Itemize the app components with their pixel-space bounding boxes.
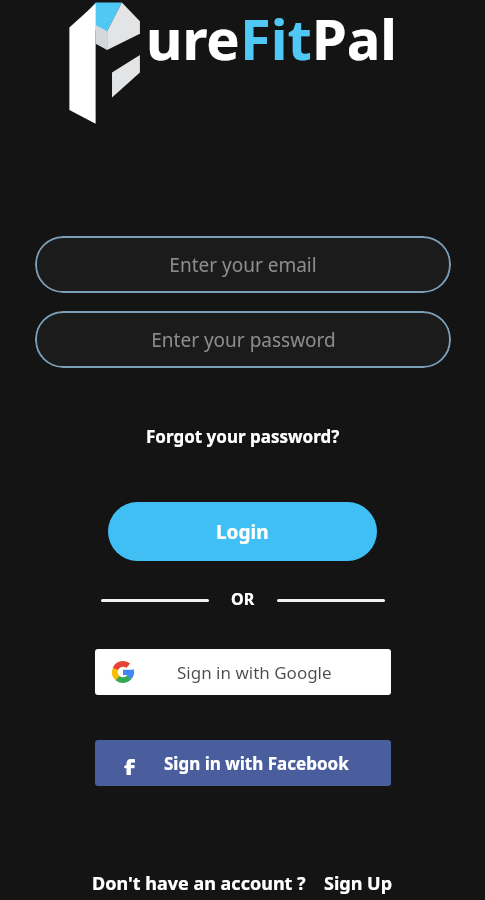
button[interactable]: Enter your email (35, 236, 451, 293)
staticText: Enter your password (151, 327, 336, 353)
button[interactable]: Login (108, 502, 377, 561)
staticText: ure (146, 0, 240, 76)
staticText: Sign Up (324, 871, 393, 896)
staticText: Login (216, 519, 269, 545)
staticText: OR (231, 588, 255, 610)
button[interactable]: Enter your password (35, 311, 451, 368)
staticText: f (124, 751, 135, 775)
staticText: Pal (312, 0, 398, 76)
staticText: Sign in with Facebook (164, 752, 349, 775)
button[interactable]: Sign Up (324, 871, 393, 896)
button[interactable]: Forgot your password? (140, 421, 346, 452)
staticText: Forgot your password? (146, 425, 340, 448)
button[interactable]: Sign in with Google (95, 649, 391, 695)
staticText: Fit (240, 0, 312, 76)
button[interactable]: f (95, 740, 391, 786)
staticText: Sign in with Google (177, 661, 332, 684)
staticText: Enter your email (169, 252, 317, 278)
staticText: Don't have an account ? (92, 871, 306, 896)
